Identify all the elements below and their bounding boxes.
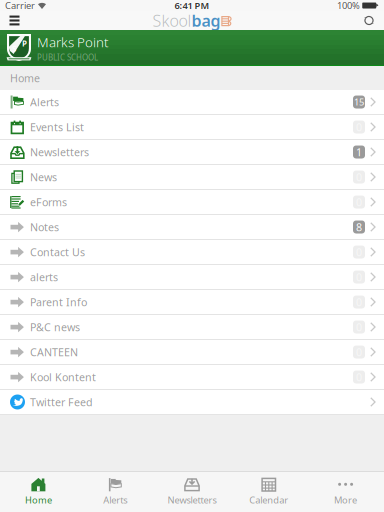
- button[interactable]: Notes: [0, 215, 384, 240]
- staticText: 0: [356, 195, 362, 209]
- staticText: bag: [191, 10, 220, 31]
- staticText: News: [30, 170, 57, 184]
- staticText: 0: [356, 295, 362, 309]
- staticText: 0: [356, 170, 362, 184]
- staticText: P: [22, 38, 27, 49]
- staticText: Events List: [30, 120, 84, 134]
- staticText: 8: [356, 220, 362, 234]
- staticText: 15: [354, 96, 364, 108]
- staticText: Contact Us: [30, 245, 85, 259]
- button[interactable]: News: [0, 165, 384, 190]
- button[interactable]: Kool Kontent: [0, 365, 384, 390]
- button[interactable]: Alerts: [0, 90, 384, 115]
- staticText: Notes: [30, 220, 59, 234]
- staticText: eForms: [30, 195, 67, 209]
- staticText: Alerts: [30, 95, 59, 109]
- button[interactable]: P&C news: [0, 315, 384, 340]
- button[interactable]: Menu: [3, 11, 26, 30]
- staticText: 0: [356, 270, 362, 284]
- button[interactable]: Refresh: [357, 11, 381, 30]
- staticText: 0: [356, 320, 362, 334]
- button[interactable]: Alerts: [77, 471, 154, 512]
- staticText: Calendar: [249, 494, 288, 506]
- staticText: 100%: [337, 0, 360, 12]
- button[interactable]: More: [307, 471, 384, 512]
- button[interactable]: Events List: [0, 115, 384, 140]
- staticText: 0: [356, 370, 362, 384]
- staticText: Alerts: [103, 494, 127, 506]
- button[interactable]: Twitter Feed: [0, 390, 384, 415]
- staticText: 1: [356, 145, 362, 159]
- staticText: Carrier: [5, 0, 35, 12]
- button[interactable]: CANTEEN: [0, 340, 384, 365]
- staticText: Skool: [152, 10, 191, 31]
- button[interactable]: Newsletters: [0, 140, 384, 165]
- staticText: 0: [356, 120, 362, 134]
- button[interactable]: Newsletters: [154, 471, 230, 512]
- staticText: S: [12, 43, 16, 54]
- staticText: PUBLIC SCHOOL: [37, 52, 98, 63]
- staticText: Kool Kontent: [30, 370, 96, 384]
- button[interactable]: Calendar: [230, 471, 307, 512]
- staticText: 6:41 PM: [174, 0, 209, 12]
- staticText: Newsletters: [30, 145, 89, 159]
- staticText: Home: [25, 494, 52, 506]
- staticText: Twitter Feed: [30, 395, 93, 409]
- staticText: 0: [356, 345, 362, 359]
- staticText: Newsletters: [167, 494, 216, 506]
- staticText: Marks Point: [37, 33, 109, 51]
- button[interactable]: eForms: [0, 190, 384, 215]
- staticText: alerts: [30, 270, 58, 284]
- staticText: CANTEEN: [30, 345, 78, 359]
- button[interactable]: Parent Info: [0, 290, 384, 315]
- button[interactable]: Contact Us: [0, 240, 384, 265]
- button[interactable]: alerts: [0, 265, 384, 290]
- staticText: P&C news: [30, 320, 80, 334]
- staticText: Parent Info: [30, 295, 87, 309]
- button[interactable]: Home: [0, 471, 77, 512]
- staticText: More: [334, 494, 357, 506]
- staticText: Home: [10, 71, 40, 85]
- staticText: 0: [356, 245, 362, 259]
